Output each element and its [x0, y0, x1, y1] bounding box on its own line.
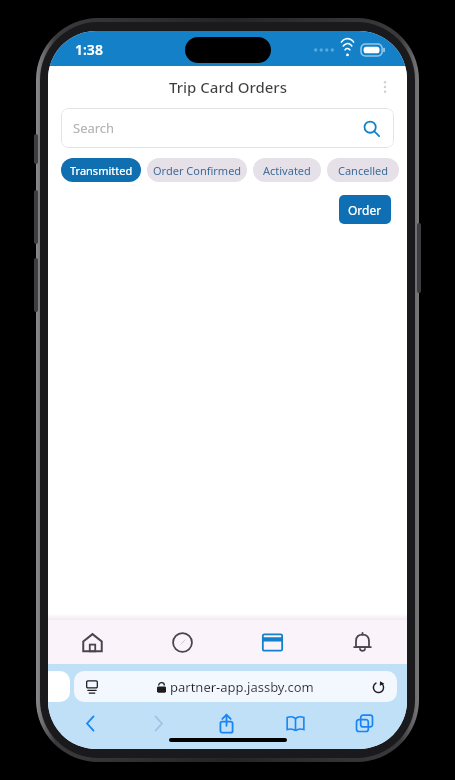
staticText: 1:38: [75, 40, 103, 59]
button[interactable]: Search: [61, 108, 394, 148]
button[interactable]: Bookmarks: [261, 710, 330, 736]
button[interactable]: Forward: [124, 710, 192, 736]
button[interactable]: [48, 671, 70, 702]
staticText: Search: [73, 119, 115, 137]
button[interactable]: Home: [48, 620, 137, 664]
staticText: Trip Card Orders: [169, 77, 287, 97]
button[interactable]: Cards: [227, 620, 317, 664]
staticText: Order Confirmed: [153, 163, 242, 178]
staticText: partner-app.jassby.com: [170, 678, 314, 696]
button[interactable]: Cancelled: [327, 158, 399, 182]
staticText: Order: [348, 202, 382, 218]
button[interactable]: Reload: [369, 678, 387, 696]
button[interactable]: More options: [371, 73, 399, 101]
staticText: Activated: [263, 163, 311, 178]
button[interactable]: Activated: [253, 158, 321, 182]
button[interactable]: Order Confirmed: [147, 158, 247, 182]
button[interactable]: Transmitted: [61, 158, 141, 182]
button[interactable]: Explore: [137, 620, 227, 664]
button[interactable]: Back: [56, 710, 124, 736]
button[interactable]: Notifications: [317, 620, 407, 664]
button[interactable]: Page settings: [83, 678, 101, 696]
button[interactable]: Tabs: [330, 710, 399, 736]
staticText: Cancelled: [338, 163, 389, 178]
button[interactable]: Share: [192, 710, 261, 736]
staticText: Transmitted: [70, 163, 133, 178]
button[interactable]: Order: [339, 195, 391, 224]
button[interactable]: Page settings: [74, 671, 397, 702]
